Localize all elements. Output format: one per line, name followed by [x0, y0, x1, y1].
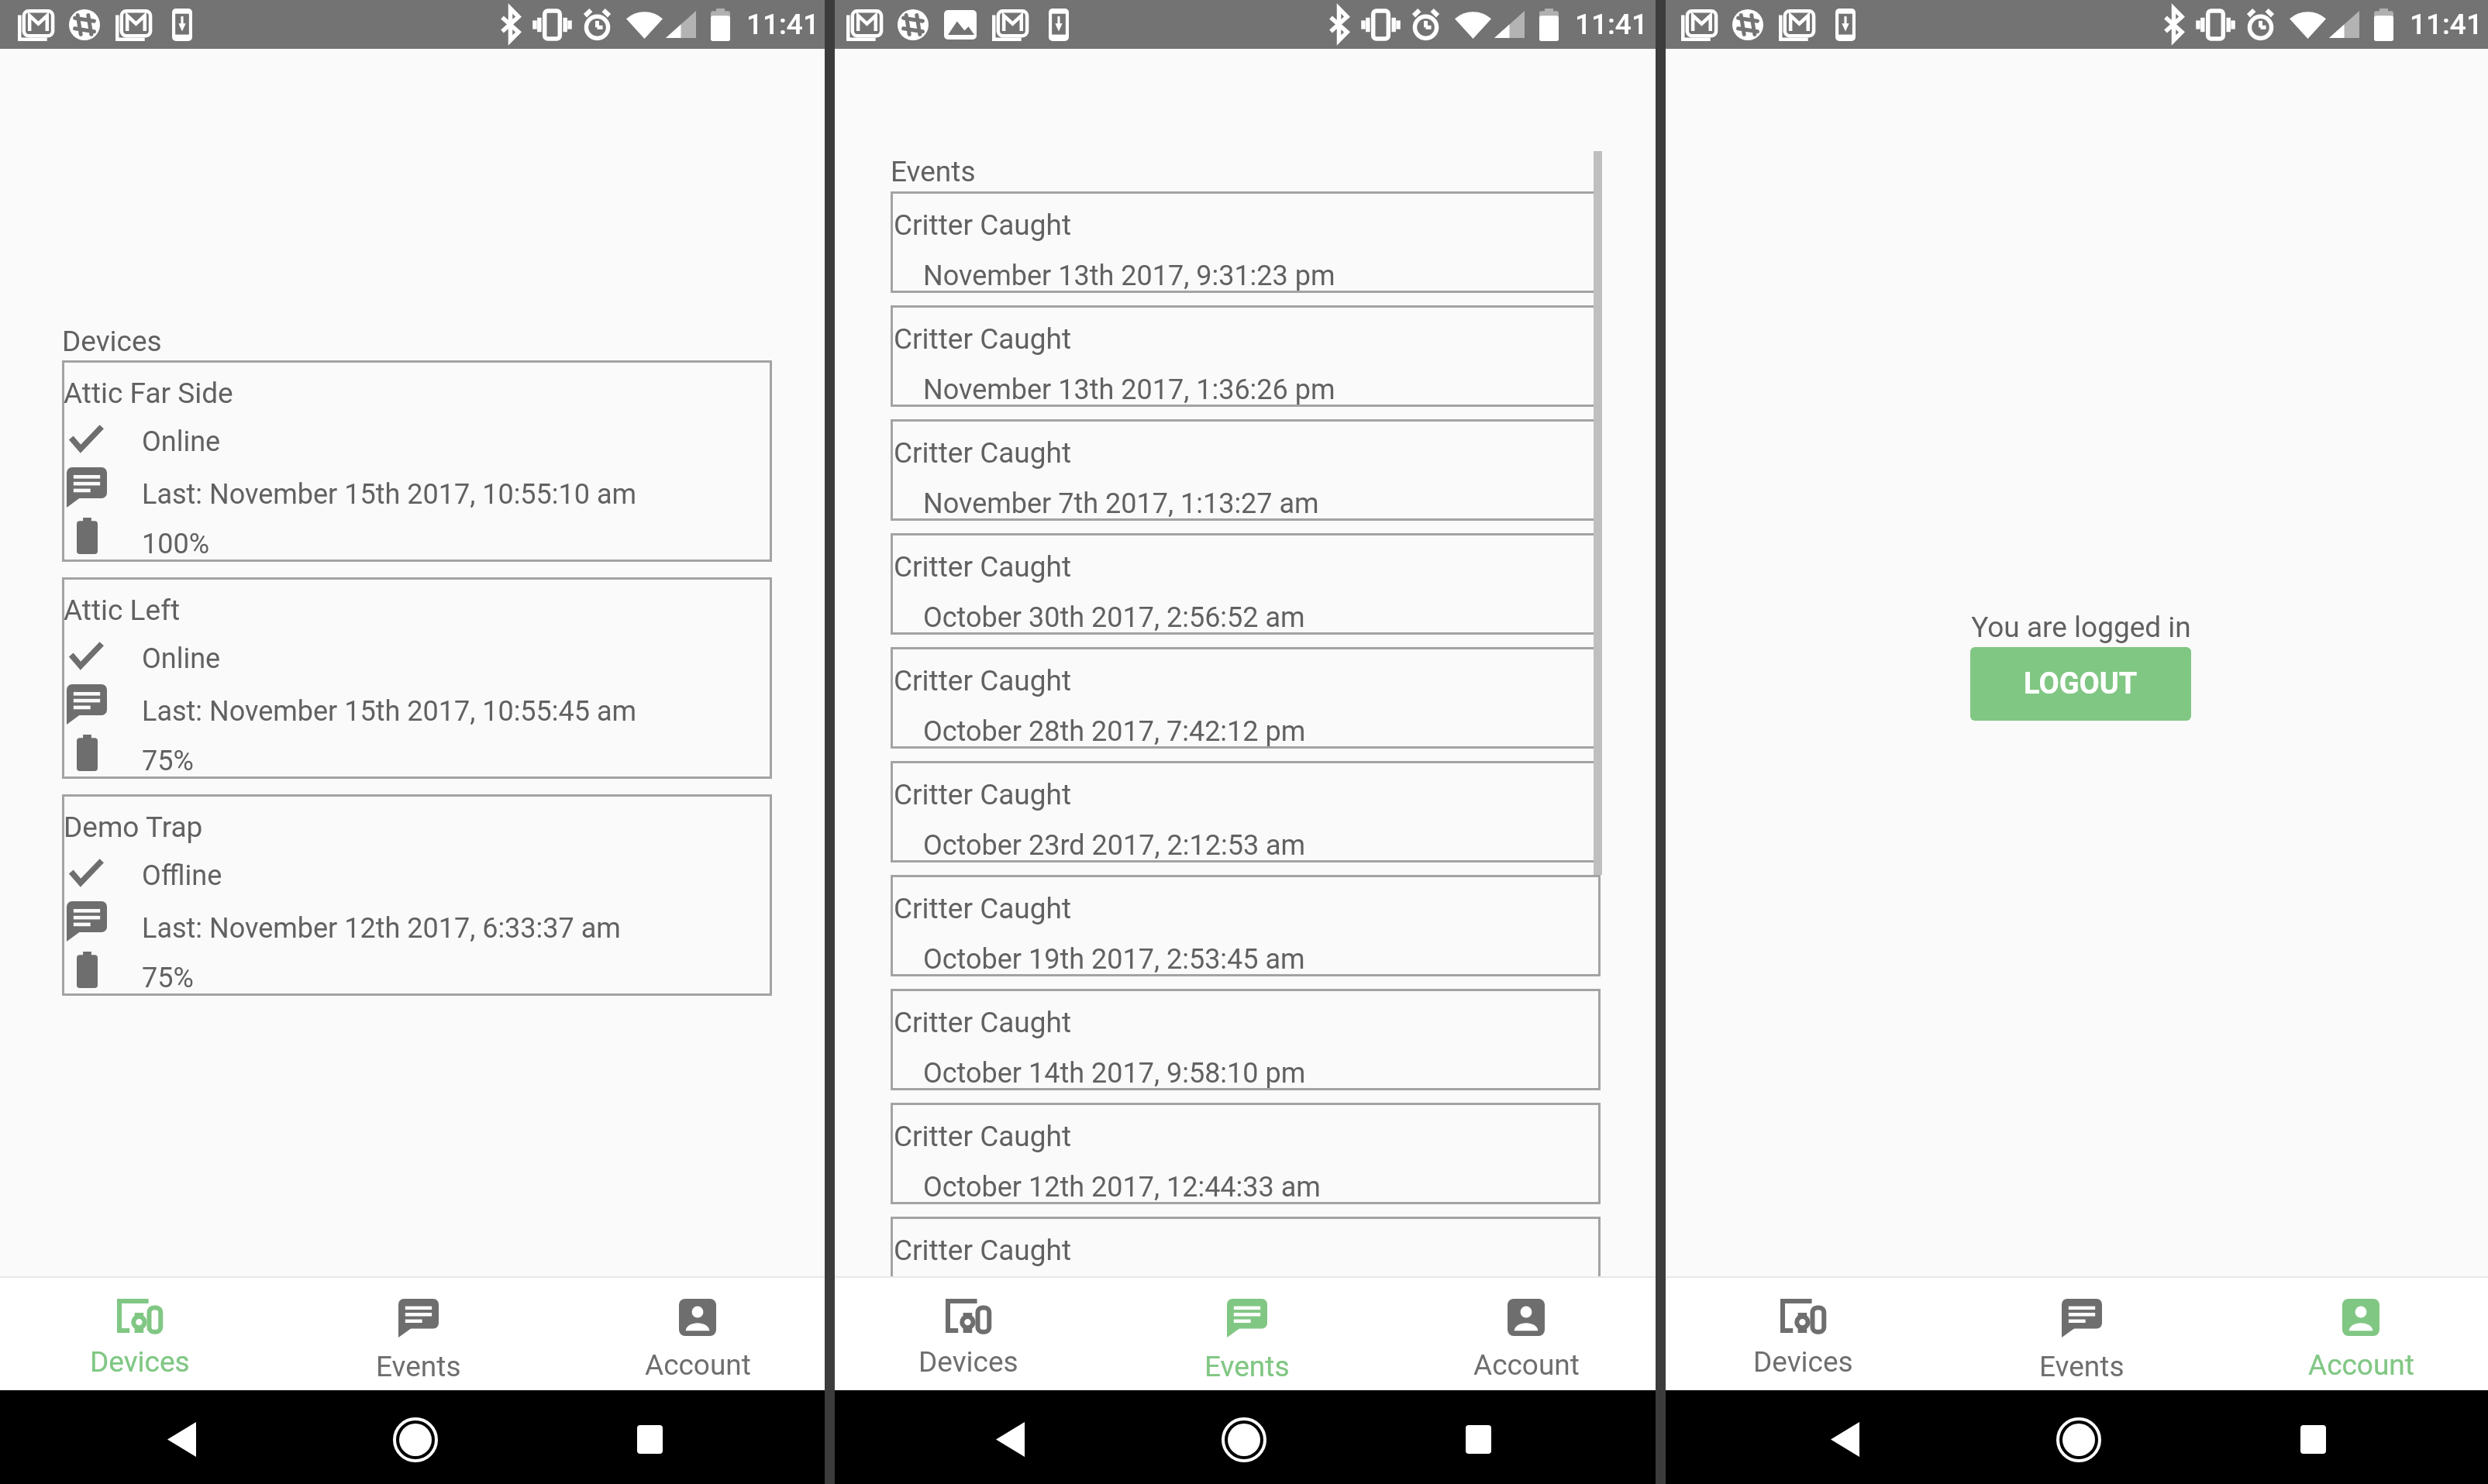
staticText: Events: [2039, 1350, 2124, 1383]
staticText: Critter Caught: [894, 664, 1072, 697]
staticText: Critter Caught: [894, 892, 1072, 925]
staticText: October 19th 2017, 2:53:45 am: [923, 943, 1305, 976]
staticText: November 7th 2017, 1:13:27 am: [923, 487, 1319, 520]
button[interactable]: Account: [2221, 1278, 2488, 1390]
staticText: Online: [142, 425, 221, 458]
staticText: LOGOUT: [2024, 666, 2138, 701]
staticText: Devices: [1753, 1345, 1853, 1379]
staticText: October 12th 2017, 12:44:33 am: [923, 1171, 1321, 1203]
button[interactable]: Critter Caught: [891, 419, 1601, 521]
button[interactable]: Home: [2021, 1390, 2137, 1484]
staticText: Account: [645, 1348, 751, 1382]
staticText: 11:41: [746, 8, 819, 41]
staticText: Attic Far Side: [64, 377, 233, 410]
staticText: Online: [142, 642, 221, 675]
staticText: You are logged in: [1971, 611, 2191, 644]
button[interactable]: Home: [1186, 1390, 1302, 1484]
staticText: October 14th 2017, 9:58:10 pm: [923, 1057, 1306, 1090]
staticText: Account: [2308, 1348, 2414, 1382]
button[interactable]: Account: [1387, 1278, 1656, 1390]
button[interactable]: Back: [1787, 1390, 1903, 1484]
button[interactable]: Critter Caught: [891, 1217, 1601, 1278]
button[interactable]: Demo Trap: [62, 794, 772, 996]
staticText: Critter Caught: [894, 550, 1072, 584]
staticText: Events: [1204, 1350, 1290, 1383]
staticText: Devices: [918, 1345, 1018, 1379]
staticText: 11:41: [2410, 8, 2483, 41]
button[interactable]: Events: [1108, 1278, 1387, 1390]
staticText: November 13th 2017, 1:36:26 pm: [923, 374, 1335, 406]
button[interactable]: Critter Caught: [891, 875, 1601, 976]
staticText: Last: November 12th 2017, 6:33:37 am: [142, 912, 621, 945]
button[interactable]: Back: [123, 1390, 239, 1484]
staticText: Demo Trap: [64, 811, 203, 844]
staticText: October 30th 2017, 2:56:52 am: [923, 601, 1305, 634]
button[interactable]: Attic Left: [62, 577, 772, 779]
button[interactable]: Devices: [0, 1278, 279, 1390]
button[interactable]: Account: [558, 1278, 825, 1390]
staticText: Attic Left: [64, 594, 181, 627]
staticText: October 28th 2017, 7:42:12 pm: [923, 715, 1306, 748]
staticText: Account: [1473, 1348, 1580, 1382]
staticText: Critter Caught: [894, 436, 1072, 470]
button[interactable]: Critter Caught: [891, 989, 1601, 1090]
staticText: Last: November 15th 2017, 10:55:10 am: [142, 478, 637, 511]
button[interactable]: Critter Caught: [891, 191, 1601, 293]
staticText: 75%: [142, 962, 194, 994]
staticText: Events: [891, 155, 976, 188]
button[interactable]: Devices: [1666, 1278, 1942, 1390]
button[interactable]: Attic Far Side: [62, 360, 772, 562]
staticText: Devices: [62, 325, 162, 358]
staticText: November 13th 2017, 9:31:23 pm: [923, 260, 1335, 292]
staticText: Critter Caught: [894, 322, 1072, 356]
button[interactable]: Back: [952, 1390, 1068, 1484]
button[interactable]: Recent apps: [591, 1390, 708, 1484]
staticText: Critter Caught: [894, 208, 1072, 242]
button[interactable]: Recent apps: [2255, 1390, 2371, 1484]
button[interactable]: Critter Caught: [891, 1103, 1601, 1204]
staticText: October 23rd 2017, 2:12:53 am: [923, 829, 1306, 862]
staticText: Offline: [142, 859, 222, 892]
button[interactable]: Critter Caught: [891, 305, 1601, 407]
staticText: Critter Caught: [894, 778, 1072, 811]
button[interactable]: Critter Caught: [891, 761, 1601, 863]
staticText: 11:41: [1575, 8, 1648, 41]
button[interactable]: Events: [1942, 1278, 2221, 1390]
staticText: Critter Caught: [894, 1234, 1072, 1267]
button[interactable]: LOGOUT: [1970, 647, 2191, 721]
button[interactable]: Recent apps: [1420, 1390, 1536, 1484]
staticText: Events: [376, 1350, 461, 1383]
button[interactable]: Home: [357, 1390, 474, 1484]
staticText: Last: November 15th 2017, 10:55:45 am: [142, 695, 637, 728]
button[interactable]: Critter Caught: [891, 533, 1601, 635]
staticText: Critter Caught: [894, 1006, 1072, 1039]
button[interactable]: Devices: [835, 1278, 1108, 1390]
staticText: 100%: [142, 528, 210, 560]
button[interactable]: Critter Caught: [891, 647, 1601, 749]
staticText: 75%: [142, 745, 194, 777]
staticText: Critter Caught: [894, 1120, 1072, 1153]
staticText: Devices: [90, 1345, 190, 1379]
button[interactable]: Events: [279, 1278, 558, 1390]
